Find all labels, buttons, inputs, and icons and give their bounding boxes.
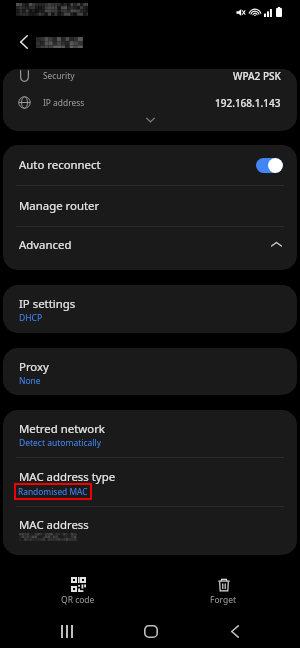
button[interactable]: Security bbox=[3, 69, 297, 89]
staticText: Auto reconnect bbox=[19, 157, 101, 173]
staticText: 192.168.1.143 bbox=[215, 96, 281, 110]
button[interactable]: IP address bbox=[3, 89, 297, 116]
staticText: Proxy bbox=[19, 359, 49, 375]
button[interactable]: IP settings bbox=[3, 285, 297, 333]
staticText: Advanced bbox=[19, 237, 72, 253]
button[interactable]: MAC address bbox=[3, 507, 297, 554]
staticText: DHCP bbox=[19, 312, 43, 324]
staticText: MAC address bbox=[19, 517, 89, 533]
button[interactable]: Advanced bbox=[3, 227, 297, 270]
staticText: IP settings bbox=[19, 296, 76, 312]
button[interactable]: Forget bbox=[188, 571, 258, 605]
button[interactable]: Manage router bbox=[3, 186, 297, 226]
staticText: Manage router bbox=[19, 198, 100, 214]
staticText: WPA2 PSK bbox=[233, 69, 281, 83]
button[interactable]: Back bbox=[216, 618, 254, 644]
button[interactable]: Home bbox=[132, 618, 170, 644]
staticText: MAC address type bbox=[19, 469, 116, 485]
button[interactable]: Back bbox=[11, 29, 37, 55]
staticText: None bbox=[19, 375, 41, 387]
staticText: Detect automatically bbox=[19, 437, 102, 449]
button[interactable]: Proxy bbox=[3, 348, 297, 395]
staticText: Metred network bbox=[19, 421, 105, 437]
button[interactable]: QR code bbox=[43, 571, 113, 605]
button[interactable]: Metred network bbox=[3, 410, 297, 457]
button[interactable]: Recent apps bbox=[48, 618, 86, 644]
staticText: QR code bbox=[61, 594, 95, 606]
button[interactable]: Auto reconnect bbox=[3, 145, 297, 185]
staticText: Forget bbox=[210, 594, 237, 606]
staticText: IP address bbox=[43, 97, 85, 108]
button[interactable]: MAC address type bbox=[3, 458, 297, 506]
staticText: Randomised MAC bbox=[18, 486, 88, 497]
staticText: Security bbox=[43, 70, 75, 81]
